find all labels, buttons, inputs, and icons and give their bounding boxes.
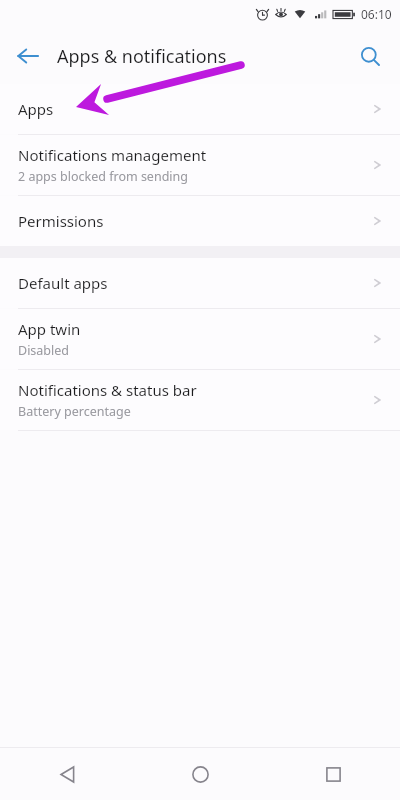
staticText: Disabled	[18, 342, 70, 359]
staticText: Permissions	[18, 211, 104, 231]
button[interactable]: Default apps	[0, 258, 400, 308]
button[interactable]: Home	[134, 748, 267, 800]
staticText: Notifications & status bar	[18, 380, 197, 400]
button[interactable]: Apps	[0, 84, 400, 134]
button[interactable]: Notifications management	[0, 135, 400, 195]
button[interactable]: Back	[0, 748, 134, 800]
staticText: Apps	[18, 99, 54, 119]
staticText: App twin	[18, 319, 81, 339]
button[interactable]: Back	[6, 34, 50, 78]
staticText: 06:10	[361, 6, 392, 22]
button[interactable]: Notifications & status bar	[0, 370, 400, 430]
button[interactable]: App twin	[0, 309, 400, 369]
staticText: Notifications management	[18, 145, 207, 165]
staticText: Battery percentage	[18, 403, 131, 420]
button[interactable]: Search	[348, 34, 392, 78]
staticText: Apps & notifications	[57, 44, 227, 69]
staticText: 2 apps blocked from sending	[18, 168, 188, 185]
button[interactable]: Recent apps	[267, 748, 400, 800]
staticText: Default apps	[18, 273, 108, 293]
button[interactable]: Permissions	[0, 196, 400, 246]
